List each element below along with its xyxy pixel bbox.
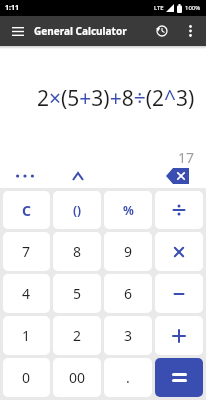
staticText: 2 <box>73 326 82 345</box>
button[interactable] <box>152 21 172 41</box>
button[interactable] <box>155 191 203 229</box>
staticText: 6 <box>124 284 133 303</box>
button[interactable]: 1 <box>3 316 50 355</box>
button[interactable]: 6 <box>104 274 152 313</box>
staticText: 8 <box>73 242 82 261</box>
staticText: % <box>123 202 134 218</box>
button[interactable] <box>164 166 192 186</box>
staticText: 7 <box>22 242 31 261</box>
staticText: 17 <box>178 148 195 167</box>
button[interactable]: 00 <box>53 358 101 397</box>
button[interactable] <box>155 232 203 271</box>
button[interactable] <box>8 21 28 41</box>
button[interactable]: 8 <box>53 232 101 271</box>
staticText: 100% <box>185 4 201 12</box>
button[interactable] <box>155 316 203 355</box>
button[interactable]: 3 <box>104 316 152 355</box>
staticText: General Calculator <box>34 24 127 38</box>
button[interactable]: 9 <box>104 232 152 271</box>
staticText: C <box>22 201 31 220</box>
staticText: LTE <box>154 4 164 12</box>
button[interactable]: () <box>53 191 101 229</box>
staticText: 3 <box>124 326 133 345</box>
button[interactable] <box>182 23 198 39</box>
staticText: . <box>126 368 130 387</box>
button[interactable] <box>155 358 203 397</box>
staticText: 9 <box>124 242 133 261</box>
button[interactable]: . <box>104 358 152 397</box>
button[interactable] <box>155 274 203 313</box>
button[interactable]: 0 <box>3 358 50 397</box>
button[interactable]: 4 <box>3 274 50 313</box>
staticText: 2×(5+3)+8÷(2^3) <box>37 84 195 113</box>
staticText: 1:11 <box>5 3 19 13</box>
button[interactable] <box>66 164 90 188</box>
staticText: 4 <box>22 284 31 303</box>
staticText: 1 <box>22 326 31 345</box>
button[interactable]: C <box>3 191 50 229</box>
button[interactable]: % <box>104 191 152 229</box>
staticText: () <box>73 202 82 218</box>
staticText: 00 <box>69 368 86 387</box>
staticText: 0 <box>22 368 31 387</box>
button[interactable]: 7 <box>3 232 50 271</box>
button[interactable]: 2 <box>53 316 101 355</box>
staticText: 5 <box>73 284 82 303</box>
button[interactable]: 5 <box>53 274 101 313</box>
button[interactable] <box>12 164 38 188</box>
